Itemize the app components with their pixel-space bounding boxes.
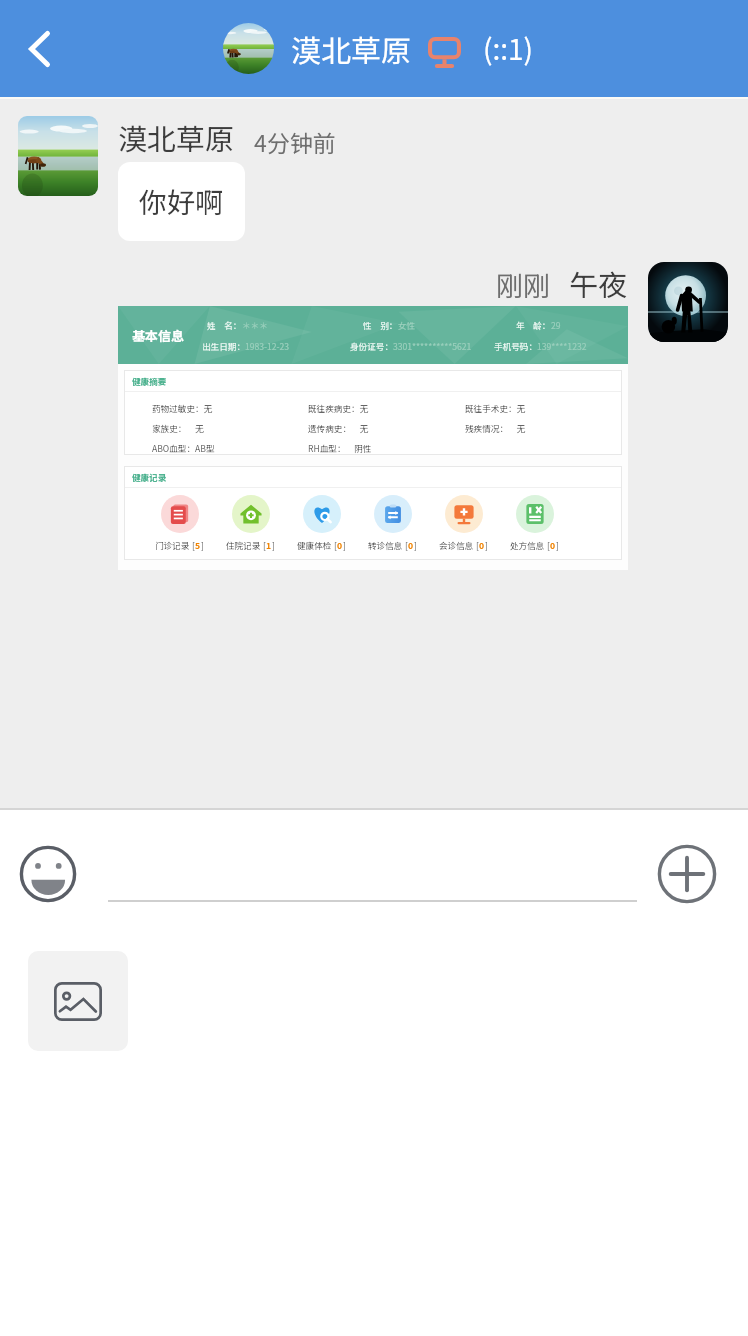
staticText: [ bbox=[545, 539, 550, 551]
staticText: 遗传病史： 无 bbox=[308, 422, 369, 434]
staticText: 1 bbox=[266, 539, 272, 551]
staticText: 药物过敏史：无 bbox=[152, 402, 213, 414]
staticText: (::1) bbox=[483, 28, 534, 69]
staticText: 3301**********5621 bbox=[393, 340, 472, 352]
staticText: 出生日期： bbox=[202, 340, 245, 352]
staticText: 漠北草原 bbox=[291, 27, 411, 70]
staticText: 139****1232 bbox=[537, 340, 587, 352]
staticText: 既往手术史：无 bbox=[465, 402, 526, 414]
staticText: [ bbox=[403, 539, 408, 551]
staticText: 住院记录 bbox=[226, 539, 261, 551]
staticText: ] bbox=[414, 539, 417, 551]
staticText: 会诊信息 bbox=[439, 539, 474, 551]
staticText: 5 bbox=[195, 539, 201, 551]
button[interactable] bbox=[108, 846, 637, 902]
staticText: 刚刚 bbox=[496, 265, 550, 304]
staticText: 手机号码： bbox=[494, 340, 537, 352]
staticText: ] bbox=[485, 539, 488, 551]
staticText: 门诊记录 bbox=[155, 539, 190, 551]
staticText: 基本信息 bbox=[132, 326, 185, 345]
staticText: ABO血型：AB型 bbox=[152, 442, 215, 454]
staticText: 女性 bbox=[398, 319, 416, 331]
staticText: ] bbox=[556, 539, 559, 551]
staticText: 身份证号： bbox=[350, 340, 393, 352]
staticText: ] bbox=[201, 539, 204, 551]
staticText: 性 别： bbox=[363, 319, 398, 331]
button[interactable]: Back bbox=[0, 0, 78, 97]
staticText: 健康体检 bbox=[297, 539, 332, 551]
staticText: 1983-12-23 bbox=[245, 340, 290, 352]
button[interactable]: Emoji bbox=[20, 846, 76, 902]
staticText: 漠北草原 bbox=[118, 116, 235, 158]
staticText: RH血型： 阴性 bbox=[308, 442, 372, 454]
button[interactable]: More options bbox=[657, 844, 717, 904]
staticText: ＊＊＊ bbox=[242, 319, 268, 331]
staticText: 年 龄： bbox=[516, 319, 551, 331]
staticText: 家族史： 无 bbox=[152, 422, 204, 434]
staticText: 姓 名： bbox=[207, 319, 242, 331]
staticText: 转诊信息 bbox=[368, 539, 403, 551]
staticText: [ bbox=[474, 539, 479, 551]
staticText: 0 bbox=[337, 539, 343, 551]
staticText: [ bbox=[190, 539, 195, 551]
staticText: 0 bbox=[550, 539, 556, 551]
staticText: 29 bbox=[551, 319, 561, 331]
button[interactable]: 你好啊 bbox=[118, 162, 245, 241]
button[interactable]: 午夜 avatar bbox=[648, 262, 728, 342]
staticText: ] bbox=[343, 539, 346, 551]
staticText: 你好啊 bbox=[139, 181, 224, 222]
staticText: 残疾情况： 无 bbox=[465, 422, 526, 434]
button[interactable]: Pick image bbox=[28, 951, 128, 1051]
staticText: ] bbox=[272, 539, 275, 551]
staticText: 0 bbox=[479, 539, 485, 551]
staticText: 0 bbox=[408, 539, 414, 551]
button[interactable]: 基本信息 bbox=[118, 306, 628, 570]
staticText: 健康摘要 bbox=[132, 375, 167, 387]
staticText: [ bbox=[332, 539, 337, 551]
button[interactable]: Cast to screen bbox=[422, 27, 466, 71]
staticText: 4分钟前 bbox=[254, 125, 336, 158]
staticText: 处方信息 bbox=[510, 539, 545, 551]
staticText: [ bbox=[261, 539, 266, 551]
staticText: 健康记录 bbox=[132, 471, 167, 483]
staticText: 午夜 bbox=[569, 262, 628, 304]
staticText: 既往疾病史：无 bbox=[308, 402, 369, 414]
